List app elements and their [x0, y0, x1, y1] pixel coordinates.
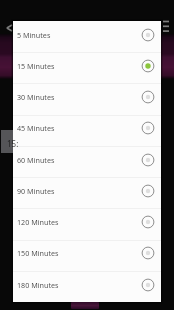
- staticText: 15:: [7, 138, 19, 149]
- staticText: 30 Minutes: [17, 92, 55, 102]
- staticText: 5 Minutes: [17, 30, 51, 40]
- button[interactable]: Back: [4, 22, 16, 34]
- button[interactable]: 90 Minutes: [13, 175, 161, 206]
- button[interactable]: Home: [71, 302, 99, 309]
- button[interactable]: 60 Minutes: [13, 144, 161, 175]
- staticText: 60 Minutes: [17, 155, 55, 165]
- button[interactable]: 180 Minutes: [13, 269, 161, 300]
- button[interactable]: 30 Minutes: [13, 81, 161, 112]
- staticText: 15 Minutes: [17, 61, 55, 71]
- button[interactable]: 15 Minutes: [13, 50, 161, 81]
- button[interactable]: More options: [163, 20, 169, 33]
- staticText: 180 Minutes: [17, 280, 59, 290]
- button[interactable]: 5 Minutes: [13, 19, 161, 50]
- staticText: 120 Minutes: [17, 217, 59, 227]
- button[interactable]: 120 Minutes: [13, 206, 161, 237]
- button[interactable]: 45 Minutes: [13, 112, 161, 143]
- staticText: 45 Minutes: [17, 123, 55, 133]
- staticText: 150 Minutes: [17, 248, 59, 258]
- staticText: 90 Minutes: [17, 186, 55, 196]
- button[interactable]: 150 Minutes: [13, 237, 161, 268]
